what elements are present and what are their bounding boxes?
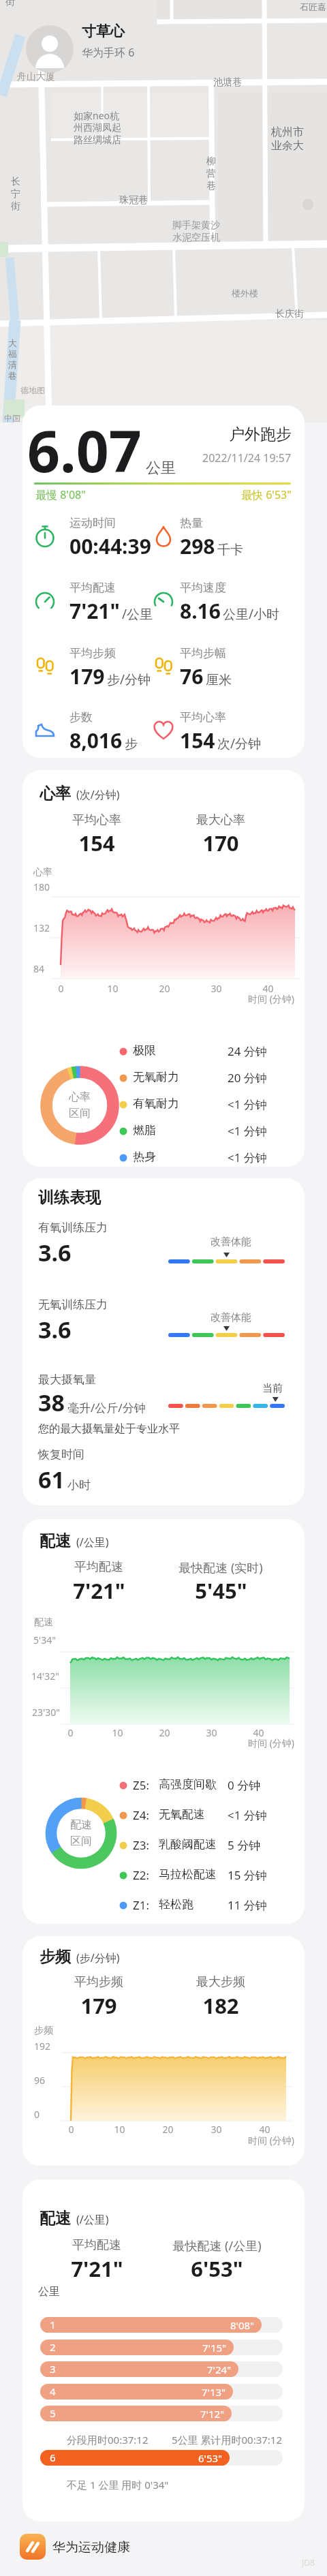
staticText: <1 分钟 bbox=[228, 1150, 267, 1165]
staticText: 德地图 bbox=[20, 385, 45, 395]
staticText: 公里/小时 bbox=[223, 605, 280, 623]
staticText: <1 分钟 bbox=[228, 1123, 267, 1139]
staticText: Z2: bbox=[133, 1867, 150, 1883]
staticText: 5 分钟 bbox=[228, 1837, 261, 1853]
staticText: 时间 (分钟) bbox=[248, 1736, 295, 1749]
staticText: 热量 bbox=[180, 516, 203, 530]
staticText: 5 bbox=[50, 2406, 56, 2420]
staticText: 高强度间歇 bbox=[159, 1777, 217, 1792]
staticText: 杭州市 bbox=[271, 124, 307, 139]
staticText: 6'53" bbox=[191, 2254, 243, 2283]
staticText: 街 bbox=[11, 200, 20, 213]
staticText: 最快配速 (实时) bbox=[178, 1559, 263, 1576]
staticText: Z4: bbox=[133, 1807, 150, 1823]
staticText: 配速 bbox=[34, 1616, 53, 1629]
staticText: 华为运动健康 bbox=[52, 2539, 130, 2556]
staticText: 20 bbox=[159, 1726, 170, 1739]
staticText: 轻松跑 bbox=[159, 1897, 193, 1912]
staticText: 无氧配速 bbox=[159, 1807, 205, 1822]
staticText: 马拉松配速 bbox=[159, 1867, 217, 1882]
staticText: 楼外楼 bbox=[232, 288, 258, 298]
staticText: 当前 bbox=[262, 1382, 283, 1395]
staticText: 0 分钟 bbox=[228, 1777, 261, 1793]
staticText: 改善体能 bbox=[211, 1311, 251, 1324]
staticText: 厘米 bbox=[206, 672, 232, 688]
staticText: 配速 bbox=[70, 1818, 92, 1832]
button[interactable]: 步频 bbox=[22, 1936, 305, 2166]
staticText: 6'53" bbox=[198, 2451, 223, 2465]
staticText: 11 分钟 bbox=[228, 1897, 267, 1913]
staticText: <1 分钟 bbox=[228, 1097, 267, 1112]
staticText: 7'12" bbox=[200, 2407, 225, 2421]
staticText: 小时 bbox=[67, 1478, 91, 1492]
staticText: 7'13" bbox=[202, 2385, 226, 2399]
staticText: 最慢 8'08" bbox=[35, 487, 86, 502]
staticText: 珠冠巷 bbox=[119, 194, 148, 206]
staticText: 公里 bbox=[146, 459, 176, 478]
staticText: 6.07 bbox=[27, 411, 142, 489]
staticText: 最大摄氧量 bbox=[38, 1373, 96, 1387]
staticText: 平均步频 bbox=[69, 646, 116, 660]
button[interactable] bbox=[20, 2534, 46, 2560]
staticText: 30 bbox=[211, 982, 222, 995]
staticText: 路丝绸城店 bbox=[74, 134, 121, 147]
staticText: 2022/11/24 19:57 bbox=[202, 450, 292, 465]
staticText: 区间 bbox=[70, 1835, 92, 1848]
staticText: 76 bbox=[180, 662, 204, 690]
button[interactable]: 心率 bbox=[22, 770, 305, 1167]
staticText: 7'15" bbox=[202, 2341, 227, 2355]
staticText: 192 bbox=[34, 2040, 51, 2053]
button[interactable] bbox=[26, 25, 74, 73]
button[interactable]: 6.07 bbox=[22, 405, 305, 758]
staticText: 华为手环 6 bbox=[82, 45, 135, 60]
staticText: 30 bbox=[206, 1726, 217, 1739]
staticText: 改善体能 bbox=[211, 1236, 251, 1248]
staticText: 8'08" bbox=[230, 2318, 255, 2332]
button[interactable]: 训练表现 bbox=[22, 1178, 305, 1505]
staticText: (/公里) bbox=[76, 2212, 109, 2227]
staticText: 最快 6'53" bbox=[241, 487, 292, 502]
staticText: 燃脂 bbox=[133, 1123, 156, 1137]
staticText: 0 bbox=[58, 982, 64, 995]
staticText: 步频 bbox=[34, 2025, 53, 2037]
staticText: JD8 bbox=[302, 2557, 315, 2568]
staticText: 平均配速 bbox=[69, 581, 116, 595]
staticText: 步 bbox=[125, 736, 138, 752]
staticText: 不足 1 公里 用时 0'34" bbox=[67, 2478, 169, 2491]
staticText: 10 bbox=[114, 2123, 125, 2136]
staticText: 脚手架黄沙 bbox=[172, 219, 220, 232]
staticText: 3.6 bbox=[38, 1314, 72, 1345]
staticText: /公里 bbox=[122, 605, 153, 623]
staticText: 7'21" bbox=[71, 2254, 123, 2283]
staticText: 石匠嘉 bbox=[300, 1, 326, 12]
staticText: 154 bbox=[78, 829, 115, 857]
staticText: 如家neo杭 bbox=[74, 109, 120, 122]
staticText: 平均步幅 bbox=[180, 646, 226, 660]
staticText: 宁 bbox=[11, 188, 20, 200]
staticText: 最大步频 bbox=[196, 1974, 245, 1990]
staticText: 5'34" bbox=[33, 1634, 56, 1646]
staticText: <1 分钟 bbox=[228, 1807, 267, 1823]
staticText: 有氧耐力 bbox=[133, 1097, 179, 1111]
staticText: 179 bbox=[69, 662, 105, 690]
staticText: 0 bbox=[67, 1726, 74, 1739]
staticText: 298 bbox=[180, 532, 215, 560]
staticText: 40 bbox=[262, 982, 274, 995]
button[interactable]: 配速 bbox=[22, 1519, 305, 1924]
staticText: 心率 bbox=[69, 1090, 91, 1104]
staticText: 14'32" bbox=[31, 1670, 59, 1683]
staticText: 寸草心 bbox=[82, 22, 125, 40]
staticText: 无氧训练压力 bbox=[38, 1298, 108, 1312]
staticText: 福 bbox=[8, 348, 17, 359]
staticText: 公里 bbox=[38, 2285, 60, 2299]
staticText: 极限 bbox=[133, 1043, 156, 1058]
staticText: 61 bbox=[38, 1464, 65, 1495]
staticText: 40 bbox=[259, 2123, 270, 2136]
staticText: 平均心率 bbox=[180, 710, 226, 724]
staticText: 1 bbox=[50, 2318, 56, 2331]
staticText: 180 bbox=[33, 880, 50, 893]
staticText: 24 分钟 bbox=[228, 1043, 267, 1059]
button[interactable]: 配速 bbox=[22, 2179, 305, 2521]
staticText: 心率 bbox=[40, 784, 71, 803]
staticText: 毫升/公斤/分钟 bbox=[67, 1400, 146, 1415]
